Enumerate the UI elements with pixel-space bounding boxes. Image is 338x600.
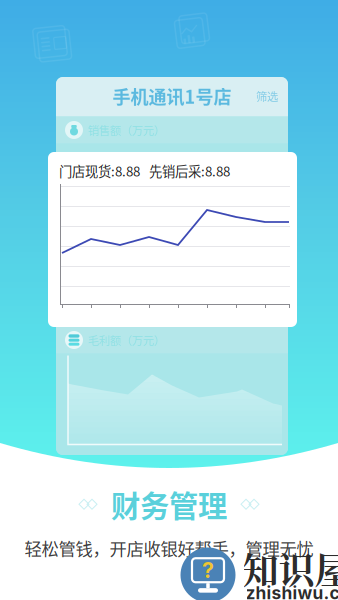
staticText: 毛利额（万元） [88, 332, 165, 348]
button[interactable]: 筛选 [256, 88, 288, 104]
staticText: zhishiwu.com [245, 582, 338, 600]
staticText: ? [202, 557, 214, 583]
staticText: 轻松管钱，开店收银好帮手，管理无忧 [24, 535, 313, 561]
staticText: 财务管理 [111, 483, 227, 525]
staticText: 销售额（万元） [88, 122, 165, 138]
staticText: 手机通讯1号店 [112, 83, 231, 109]
staticText: 筛选 [256, 88, 278, 104]
staticText: 知识屋 [242, 542, 338, 594]
staticText: 门店现货:8.88 先销后采:8.88 [59, 161, 230, 180]
